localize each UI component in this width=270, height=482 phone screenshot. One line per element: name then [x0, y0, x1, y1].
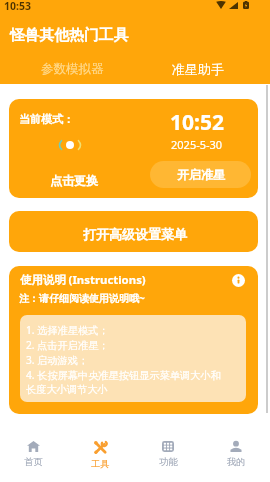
staticText: 点击更换	[50, 173, 98, 188]
button[interactable]: Info	[230, 272, 246, 288]
staticText: 10:53	[4, 0, 31, 13]
button[interactable]: 首页	[0, 414, 67, 482]
button[interactable]: 打开高级设置菜单	[9, 211, 258, 252]
staticText: 2025-5-30	[171, 137, 223, 152]
staticText: 当前模式：	[19, 112, 74, 126]
staticText: 开启准星	[177, 167, 225, 182]
staticText: 打开高级设置菜单	[83, 226, 187, 242]
staticText: 3. 启动游戏；	[26, 353, 89, 368]
button[interactable]: 参数模拟器	[22, 59, 123, 79]
staticText: 长度大小调节大小	[26, 383, 108, 398]
staticText: 怪兽其他热门工具	[10, 26, 129, 45]
staticText: 准星助手	[172, 61, 224, 77]
button[interactable]: 开启准星	[150, 161, 251, 188]
staticText: 我的	[227, 456, 246, 468]
staticText: 10:52	[170, 108, 224, 137]
staticText: 工具	[91, 458, 110, 470]
staticText: 首页	[24, 456, 43, 468]
staticText: 注：请仔细阅读使用说明哦~	[19, 291, 145, 305]
staticText: 参数模拟器	[41, 61, 104, 77]
button[interactable]: 当前模式：	[9, 99, 258, 198]
button[interactable]: 准星助手	[147, 59, 248, 79]
staticText: 2. 点击开启准星；	[26, 338, 109, 353]
staticText: 功能	[159, 456, 178, 468]
staticText: 1. 选择准星模式；	[26, 323, 109, 338]
staticText: 使用说明 (Instructions)	[20, 272, 146, 288]
button[interactable]: 工具	[67, 414, 134, 482]
button[interactable]: 功能	[134, 414, 202, 482]
staticText: 4. 长按屏幕中央准星按钮显示菜单调大小和	[26, 368, 221, 383]
button[interactable]: 我的	[202, 414, 270, 482]
